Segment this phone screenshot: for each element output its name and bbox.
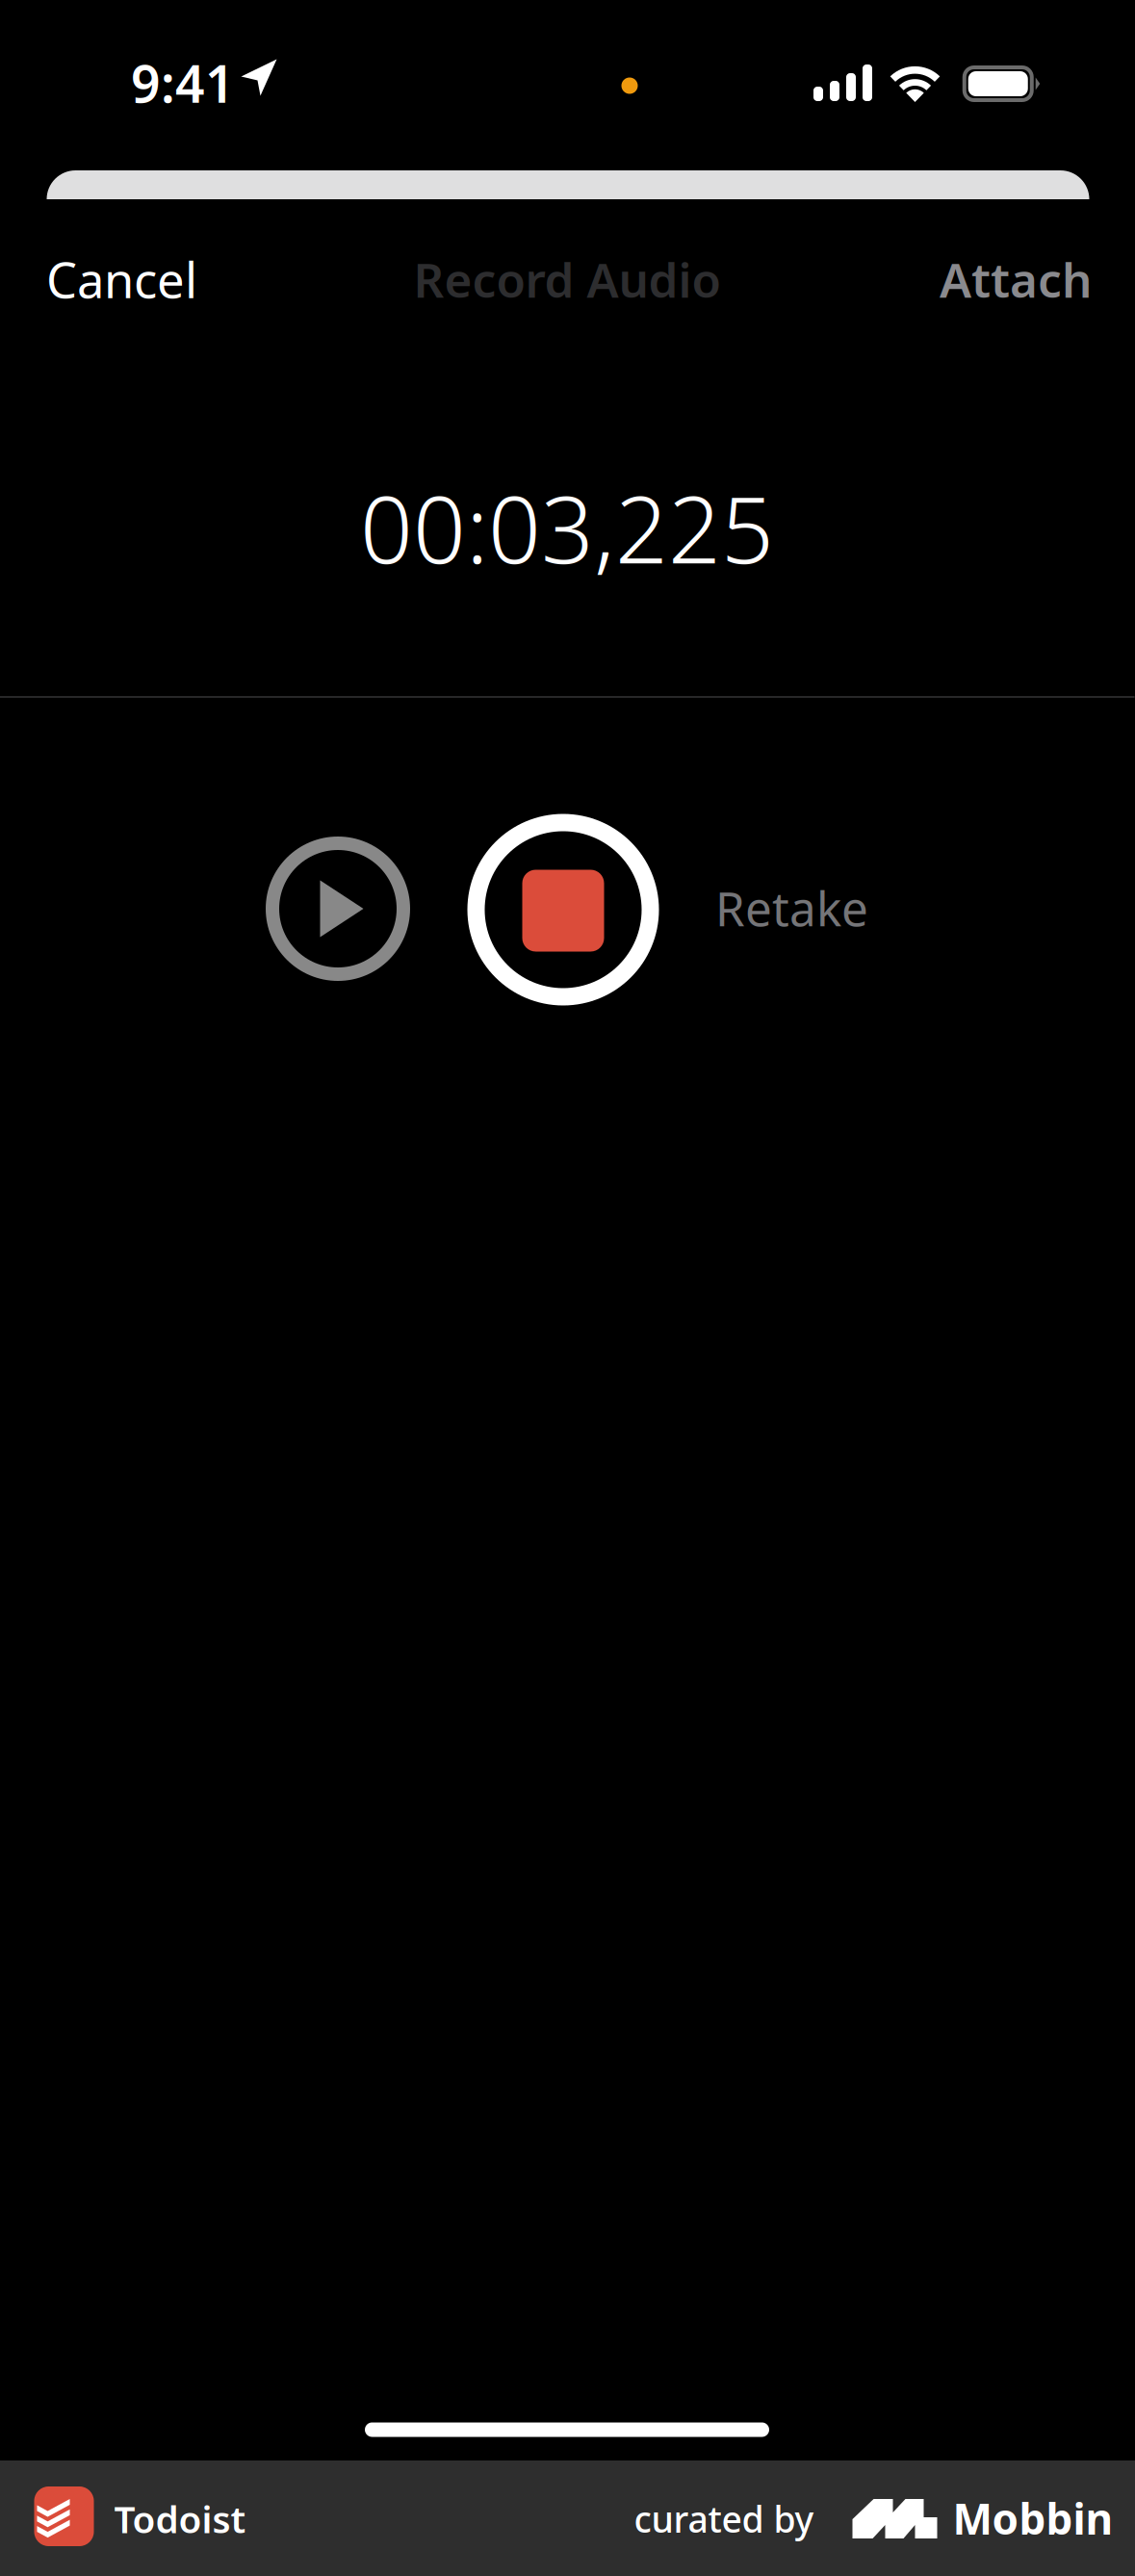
button[interactable]: Stop recording xyxy=(467,814,659,1005)
staticText: Attach xyxy=(940,248,1092,311)
staticText: Mobbin xyxy=(953,2490,1113,2546)
staticText: 9:41 xyxy=(131,49,235,117)
button[interactable]: Retake xyxy=(715,860,908,956)
staticText: 00:03,225 xyxy=(360,466,774,589)
staticText: curated by xyxy=(634,2495,814,2543)
button[interactable]: Play recording xyxy=(266,837,410,981)
staticText: Retake xyxy=(715,876,868,939)
staticText: Todoist xyxy=(114,2494,246,2543)
button[interactable]: Attach xyxy=(899,231,1092,327)
button[interactable]: Cancel xyxy=(46,231,239,327)
staticText: Record Audio xyxy=(413,248,721,311)
staticText: Cancel xyxy=(46,247,197,312)
